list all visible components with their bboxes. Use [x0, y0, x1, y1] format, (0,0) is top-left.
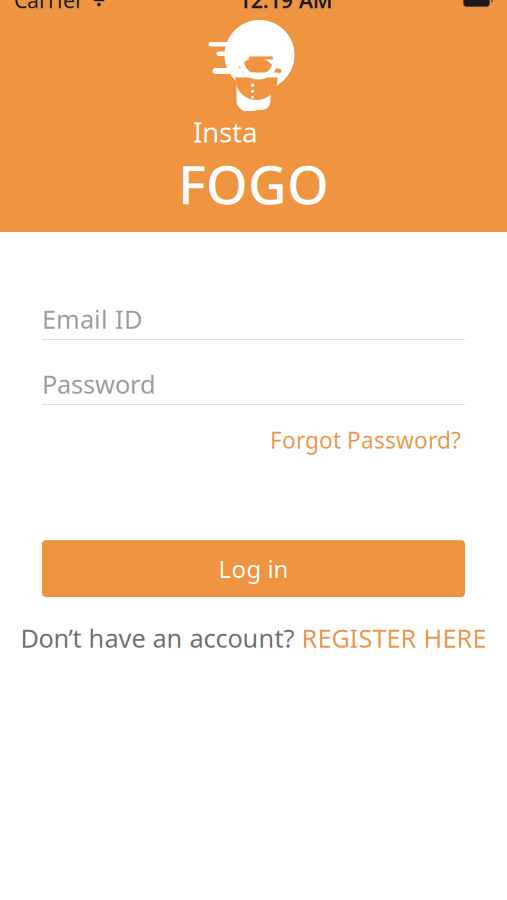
staticText: Don’t have an account? — [20, 621, 294, 655]
staticText: FOGO — [178, 148, 329, 219]
staticText: REGISTER HERE — [301, 621, 486, 655]
staticText: Carrier — [14, 0, 84, 14]
staticText: Log in — [218, 553, 288, 585]
staticText: Email ID — [42, 302, 142, 336]
staticText: Insta — [193, 113, 258, 150]
staticText: Forgot Password? — [270, 425, 461, 455]
button[interactable]: Forgot Password? — [266, 419, 465, 461]
button[interactable]: Don’t have an account? — [0, 616, 507, 660]
staticText: 12:19 AM — [239, 0, 333, 14]
button[interactable]: Log in — [42, 540, 465, 597]
staticText: Password — [42, 367, 156, 401]
